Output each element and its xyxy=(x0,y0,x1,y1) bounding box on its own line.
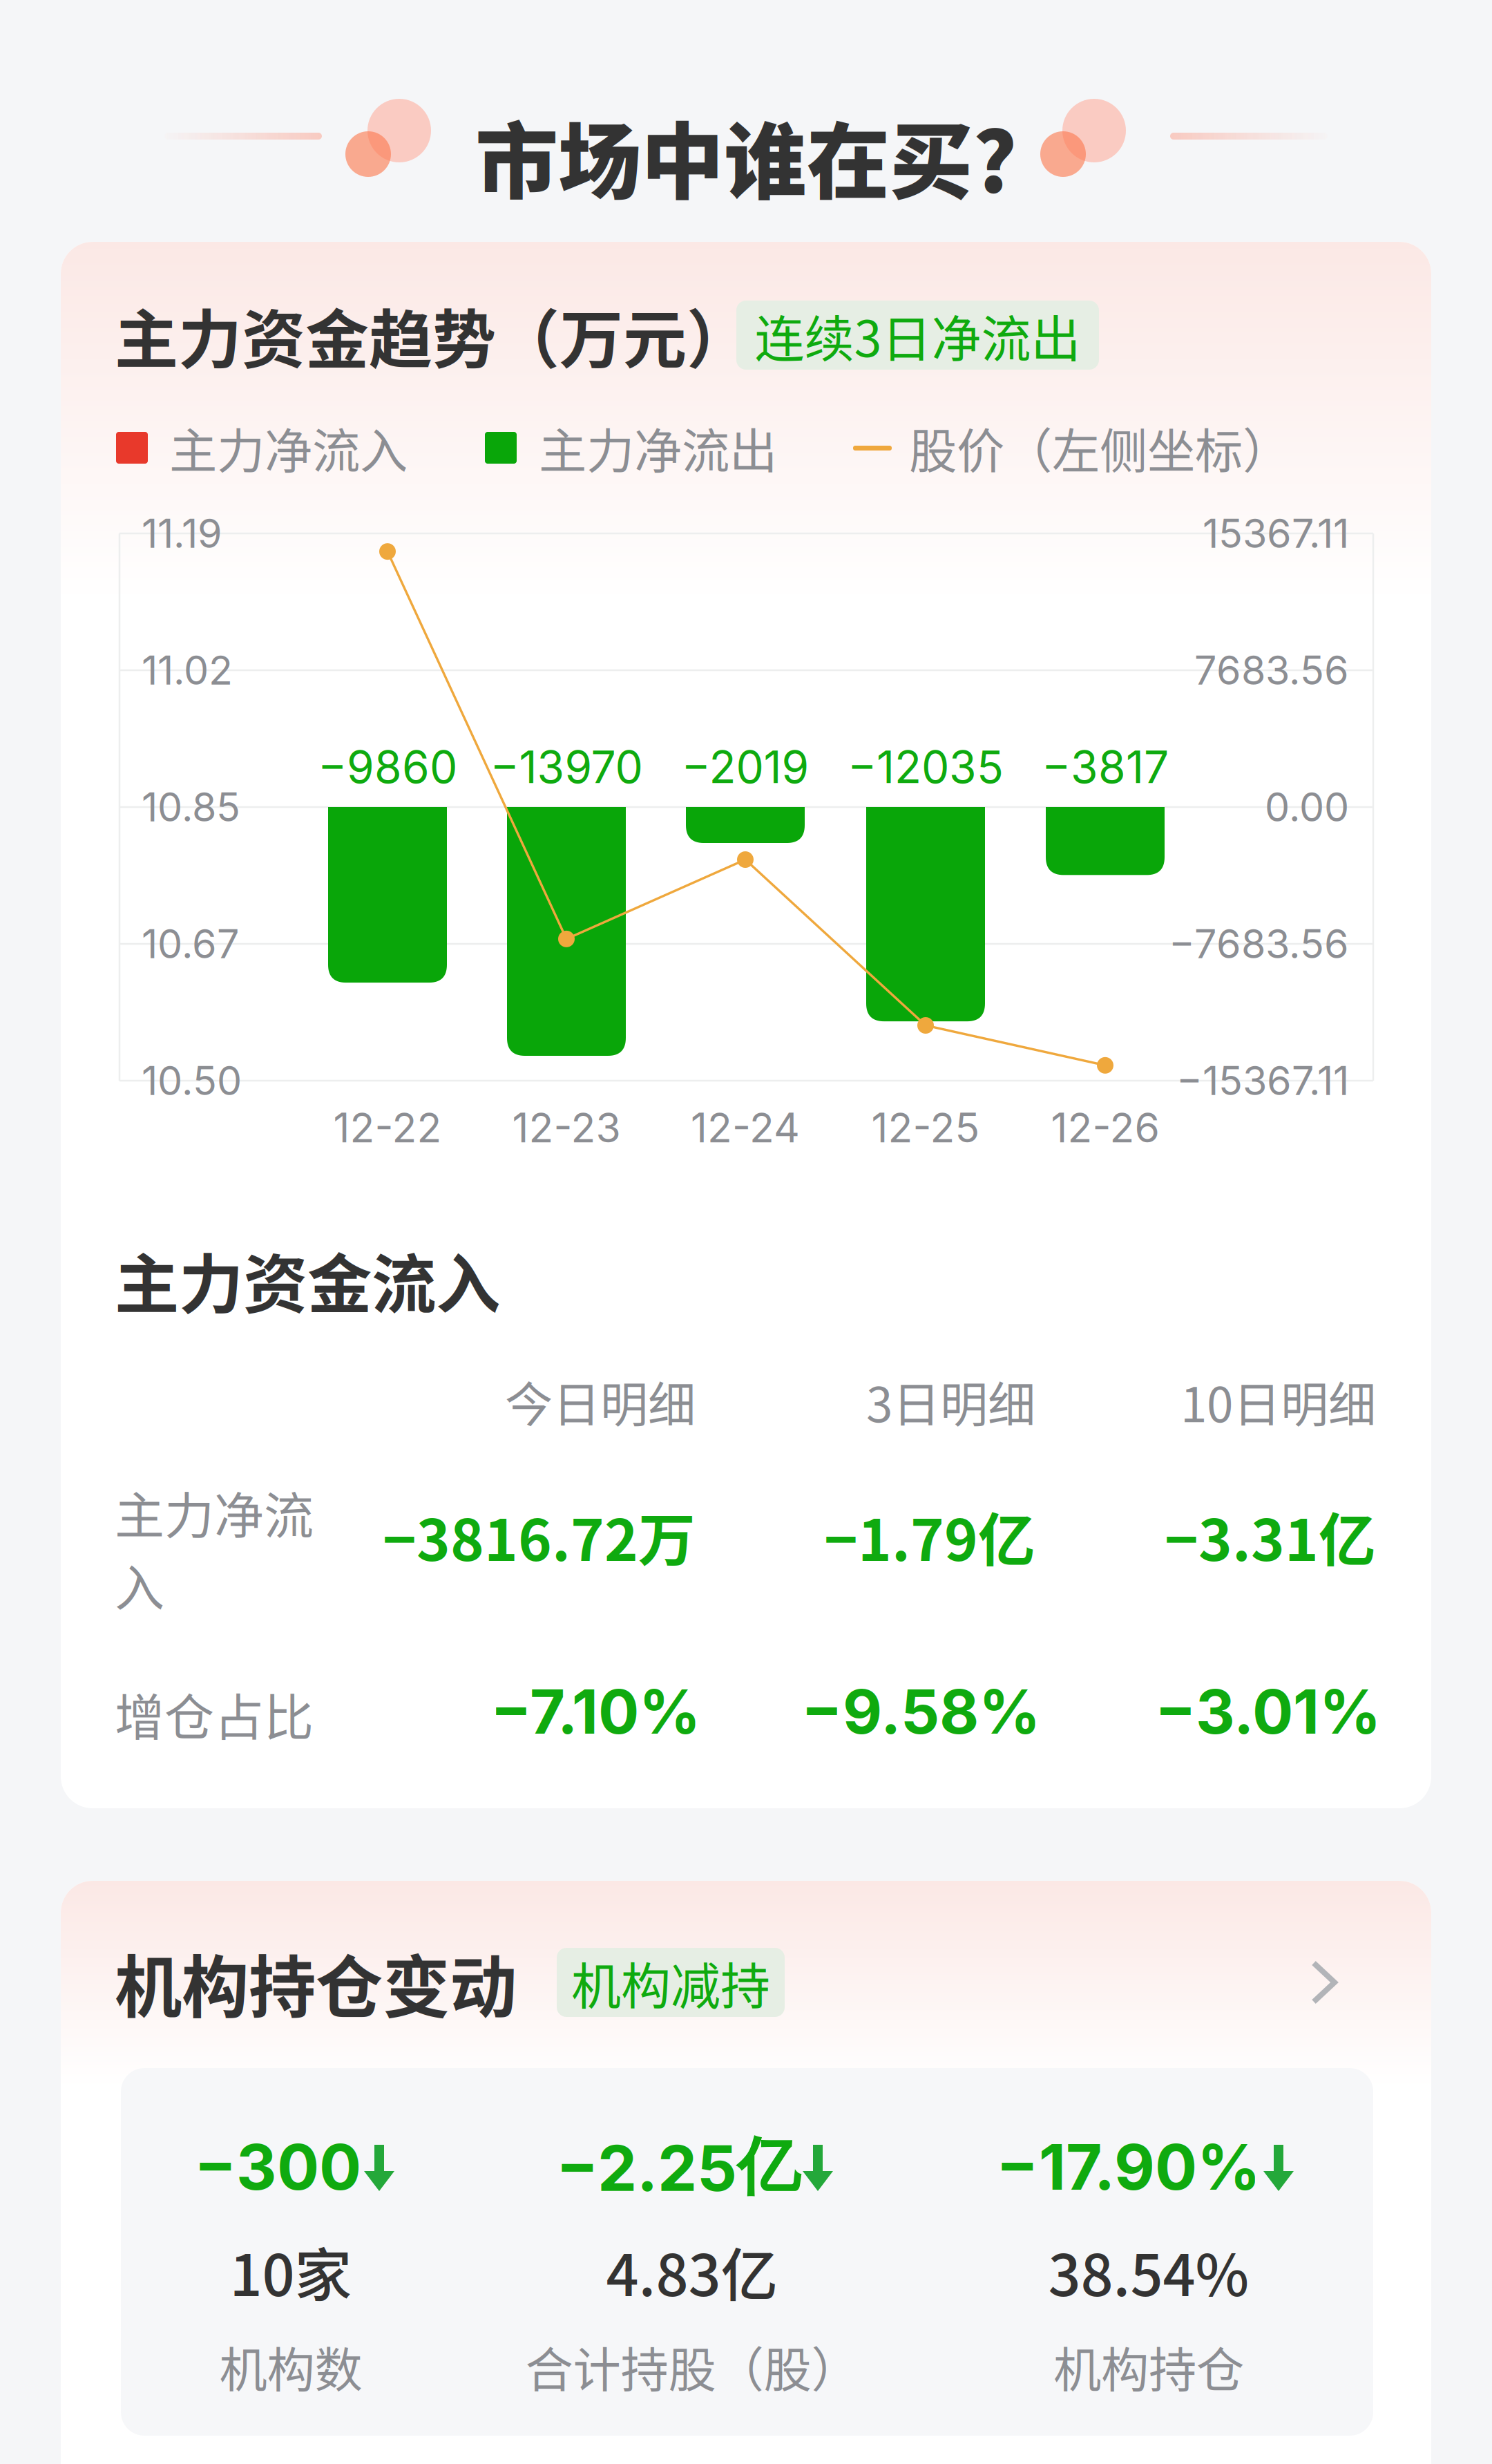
staticText: −7683.56 xyxy=(1169,920,1349,968)
staticText: 12-23 xyxy=(512,1103,621,1152)
staticText: −3.31亿 xyxy=(1165,1495,1376,1577)
staticText: 4.83亿 xyxy=(606,2230,778,2313)
staticText: 主力净流入 xyxy=(169,413,408,482)
staticText: −15367.11 xyxy=(1176,1057,1349,1105)
staticText: 今日明细 xyxy=(505,1367,696,1436)
staticText: −2.25亿 xyxy=(556,2127,800,2206)
staticText: 连续3日净流出 xyxy=(755,299,1081,371)
staticText: −3.01% xyxy=(1155,1675,1381,1748)
staticText: 机构持仓 xyxy=(1053,2332,1244,2401)
staticText: 12-26 xyxy=(1051,1103,1159,1152)
staticText: 15367.11 xyxy=(1203,509,1349,557)
staticText: 10.85 xyxy=(142,783,240,831)
staticText: 3日明细 xyxy=(866,1367,1035,1436)
staticText: 10家 xyxy=(230,2230,352,2313)
staticText: 10.67 xyxy=(142,920,239,968)
staticText: 增仓占比 xyxy=(115,1678,314,1750)
staticText: 合计持股（股） xyxy=(525,2332,859,2401)
staticText: 0.00 xyxy=(1265,783,1349,831)
staticText: 12-25 xyxy=(871,1103,980,1152)
staticText: 机构减持 xyxy=(571,1946,770,2018)
staticText: 10日明细 xyxy=(1180,1367,1376,1436)
staticText: 市场中谁在买? xyxy=(475,96,1017,216)
staticText: 机构数 xyxy=(219,2332,362,2401)
staticText: −12035 xyxy=(848,740,1004,794)
staticText: 股价（左侧坐标） xyxy=(909,413,1290,482)
staticText: 12-22 xyxy=(333,1103,442,1152)
staticText: −17.90% xyxy=(996,2129,1261,2205)
staticText: 11.19 xyxy=(142,509,222,557)
staticText: 11.02 xyxy=(142,646,233,694)
staticText: 38.54% xyxy=(1048,2230,1249,2313)
staticText: 12-24 xyxy=(691,1103,800,1152)
staticText: −300 xyxy=(194,2129,361,2205)
button[interactable]: 机构持仓变动 xyxy=(61,1881,1431,2055)
staticText: −7.10% xyxy=(490,1675,700,1748)
staticText: −13970 xyxy=(490,740,643,794)
staticText: 7683.56 xyxy=(1194,646,1349,694)
staticText: −2019 xyxy=(681,740,809,794)
staticText: 10.50 xyxy=(142,1057,242,1105)
staticText: −3817 xyxy=(1042,740,1169,794)
staticText: 机构持仓变动 xyxy=(115,1934,517,2031)
staticText: 主力净流入 xyxy=(115,1476,314,1620)
staticText: 主力净流出 xyxy=(539,413,777,482)
staticText: −1.79亿 xyxy=(824,1495,1035,1577)
staticText: −9860 xyxy=(318,740,457,794)
staticText: −9.58% xyxy=(801,1675,1040,1748)
staticText: −3816.72万 xyxy=(383,1495,696,1577)
staticText: 主力资金流入 xyxy=(115,1233,500,1326)
staticText: 主力资金趋势（万元） xyxy=(115,289,750,381)
